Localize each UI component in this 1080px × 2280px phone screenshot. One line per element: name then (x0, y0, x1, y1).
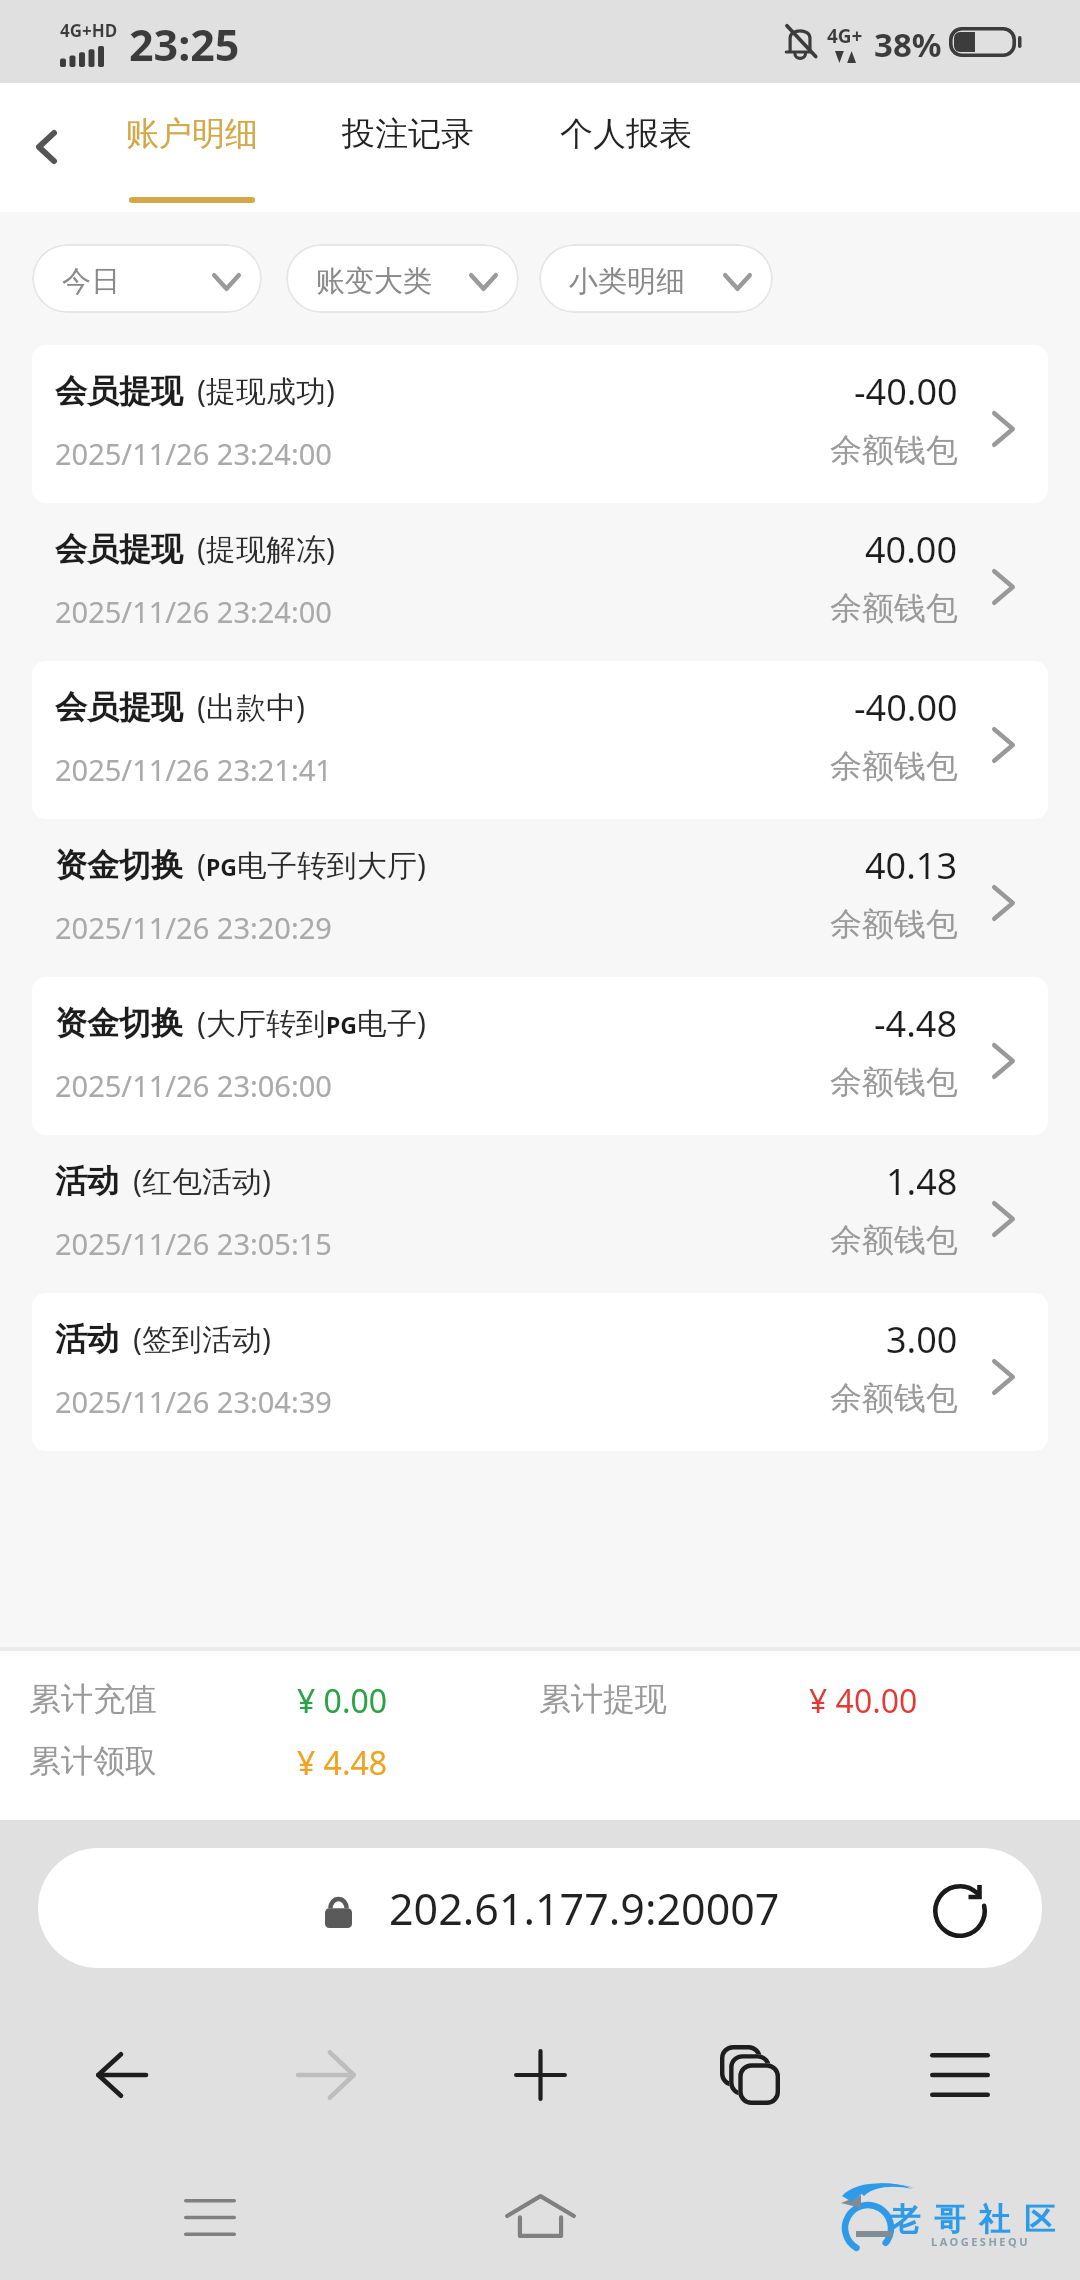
button[interactable]: Recents (155, 2162, 265, 2272)
button[interactable]: Back (63, 2022, 179, 2128)
staticText: 会员提现 (55, 687, 183, 727)
staticText: (PG电子转到大厅) (197, 844, 426, 885)
staticText: 2025/11/26 23:21:41 (55, 750, 332, 789)
staticText: 余额钱包 (830, 904, 958, 944)
staticText: 余额钱包 (830, 588, 958, 628)
button[interactable]: 账户明细 (126, 83, 258, 212)
button[interactable]: Home (485, 2161, 595, 2271)
staticText: 202.61.177.9:20007 (389, 1879, 780, 1938)
staticText: 老哥社区 (882, 2200, 1062, 2239)
staticText: 2025/11/26 23:24:00 (55, 434, 332, 473)
staticText: 余额钱包 (830, 1062, 958, 1102)
staticText: 2025/11/26 23:04:39 (55, 1382, 332, 1421)
staticText: ¥ 4.48 (297, 1741, 388, 1785)
button[interactable]: Tabs (692, 2022, 808, 2128)
staticText: (出款中) (197, 686, 305, 727)
button[interactable]: Back (0, 97, 96, 197)
staticText: 4G+ (827, 23, 863, 49)
staticText: -40.00 (854, 683, 958, 732)
button[interactable]: 活动 (32, 1135, 1048, 1293)
staticText: 活动 (55, 1161, 119, 1201)
staticText: 活动 (55, 1319, 119, 1359)
staticText: ¥ 0.00 (297, 1679, 539, 1723)
staticText: 40.13 (865, 841, 958, 890)
staticText: 投注记录 (342, 113, 474, 155)
staticText: 会员提现 (55, 371, 183, 411)
staticText: 资金切换 (55, 845, 183, 885)
staticText: -40.00 (854, 367, 958, 416)
staticText: 账户明细 (126, 113, 258, 155)
button[interactable]: 小类明细 (539, 244, 773, 313)
staticText: 2025/11/26 23:24:00 (55, 592, 332, 631)
button[interactable]: 会员提现 (32, 503, 1048, 661)
staticText: 余额钱包 (830, 1378, 958, 1418)
staticText: 3.00 (886, 1315, 958, 1364)
button[interactable]: 资金切换 (32, 819, 1048, 977)
staticText: 余额钱包 (830, 746, 958, 786)
staticText: 2025/11/26 23:05:15 (55, 1224, 332, 1263)
button[interactable]: 投注记录 (342, 83, 474, 212)
staticText: 余额钱包 (830, 430, 958, 470)
button[interactable]: Forward (269, 2022, 385, 2128)
button[interactable]: 会员提现 (32, 661, 1048, 819)
button[interactable]: Menu (902, 2022, 1018, 2128)
staticText: (签到活动) (133, 1318, 271, 1359)
button[interactable]: 资金切换 (32, 977, 1048, 1135)
staticText: 余额钱包 (830, 1220, 958, 1260)
staticText: (大厅转到PG电子) (197, 1002, 426, 1043)
button[interactable]: Reload (910, 1861, 1010, 1961)
staticText: 账变大类 (316, 263, 432, 300)
button[interactable]: 今日 (32, 244, 262, 313)
staticText: 38% (874, 22, 942, 67)
staticText: 2025/11/26 23:20:29 (55, 908, 332, 947)
staticText: 23:25 (129, 15, 240, 74)
button[interactable]: 202.61.177.9:20007 (38, 1848, 1042, 1968)
button[interactable]: 账变大类 (286, 244, 519, 313)
button[interactable]: 个人报表 (560, 83, 692, 212)
staticText: 4G+HD (60, 19, 118, 42)
staticText: 会员提现 (55, 529, 183, 569)
button[interactable]: 会员提现 (32, 345, 1048, 503)
staticText: 资金切换 (55, 1003, 183, 1043)
staticText: 2025/11/26 23:06:00 (55, 1066, 332, 1105)
staticText: 今日 (62, 263, 120, 300)
staticText: 40.00 (865, 525, 958, 574)
staticText: 累计充值 (29, 1679, 297, 1719)
button[interactable]: New tab (482, 2022, 598, 2128)
staticText: 小类明细 (569, 263, 685, 300)
staticText: 1.48 (886, 1157, 958, 1206)
staticText: 个人报表 (560, 113, 692, 155)
staticText: (红包活动) (133, 1160, 271, 1201)
button[interactable]: 活动 (32, 1293, 1048, 1451)
staticText: (提现解冻) (197, 528, 335, 569)
staticText: 累计提现 (539, 1679, 809, 1719)
staticText: (提现成功) (197, 370, 335, 411)
staticText: -4.48 (874, 999, 958, 1048)
staticText: 累计领取 (29, 1741, 297, 1781)
staticText: LAOGESHEQU (931, 2234, 1031, 2249)
staticText: ¥ 40.00 (809, 1679, 918, 1723)
